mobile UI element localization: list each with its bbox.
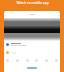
button[interactable]: Share target [55, 59, 58, 62]
button[interactable]: Continue [27, 67, 37, 69]
button[interactable]: Share target [45, 59, 48, 62]
button[interactable]: Share target [16, 59, 19, 62]
button[interactable] [4, 41, 60, 47]
staticText: Watch on mobile app [16, 1, 49, 5]
button[interactable]: Share target [26, 59, 29, 62]
button[interactable]: Share target [35, 59, 38, 62]
button[interactable]: Share target [6, 59, 9, 62]
